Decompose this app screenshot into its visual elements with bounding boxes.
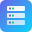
button[interactable]: Second item xyxy=(0,0,32,32)
button[interactable]: First item xyxy=(0,0,32,32)
button[interactable]: Third item xyxy=(0,0,32,32)
